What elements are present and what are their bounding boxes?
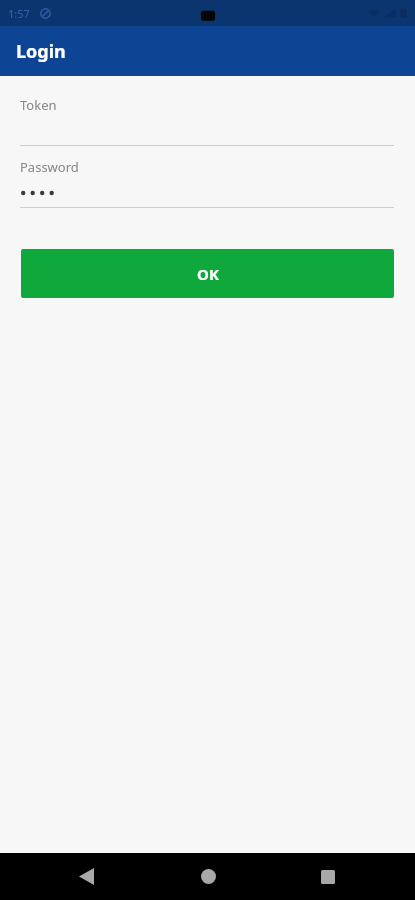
- staticText: 1:57: [8, 6, 30, 21]
- staticText: Password: [20, 158, 79, 176]
- staticText: OK: [197, 264, 219, 284]
- button[interactable]: Back: [62, 853, 110, 900]
- staticText: Token: [20, 96, 57, 114]
- button[interactable]: Home: [184, 853, 232, 900]
- staticText: Login: [16, 39, 66, 64]
- button[interactable]: OK: [21, 249, 394, 298]
- button[interactable]: Recent apps: [304, 853, 352, 900]
